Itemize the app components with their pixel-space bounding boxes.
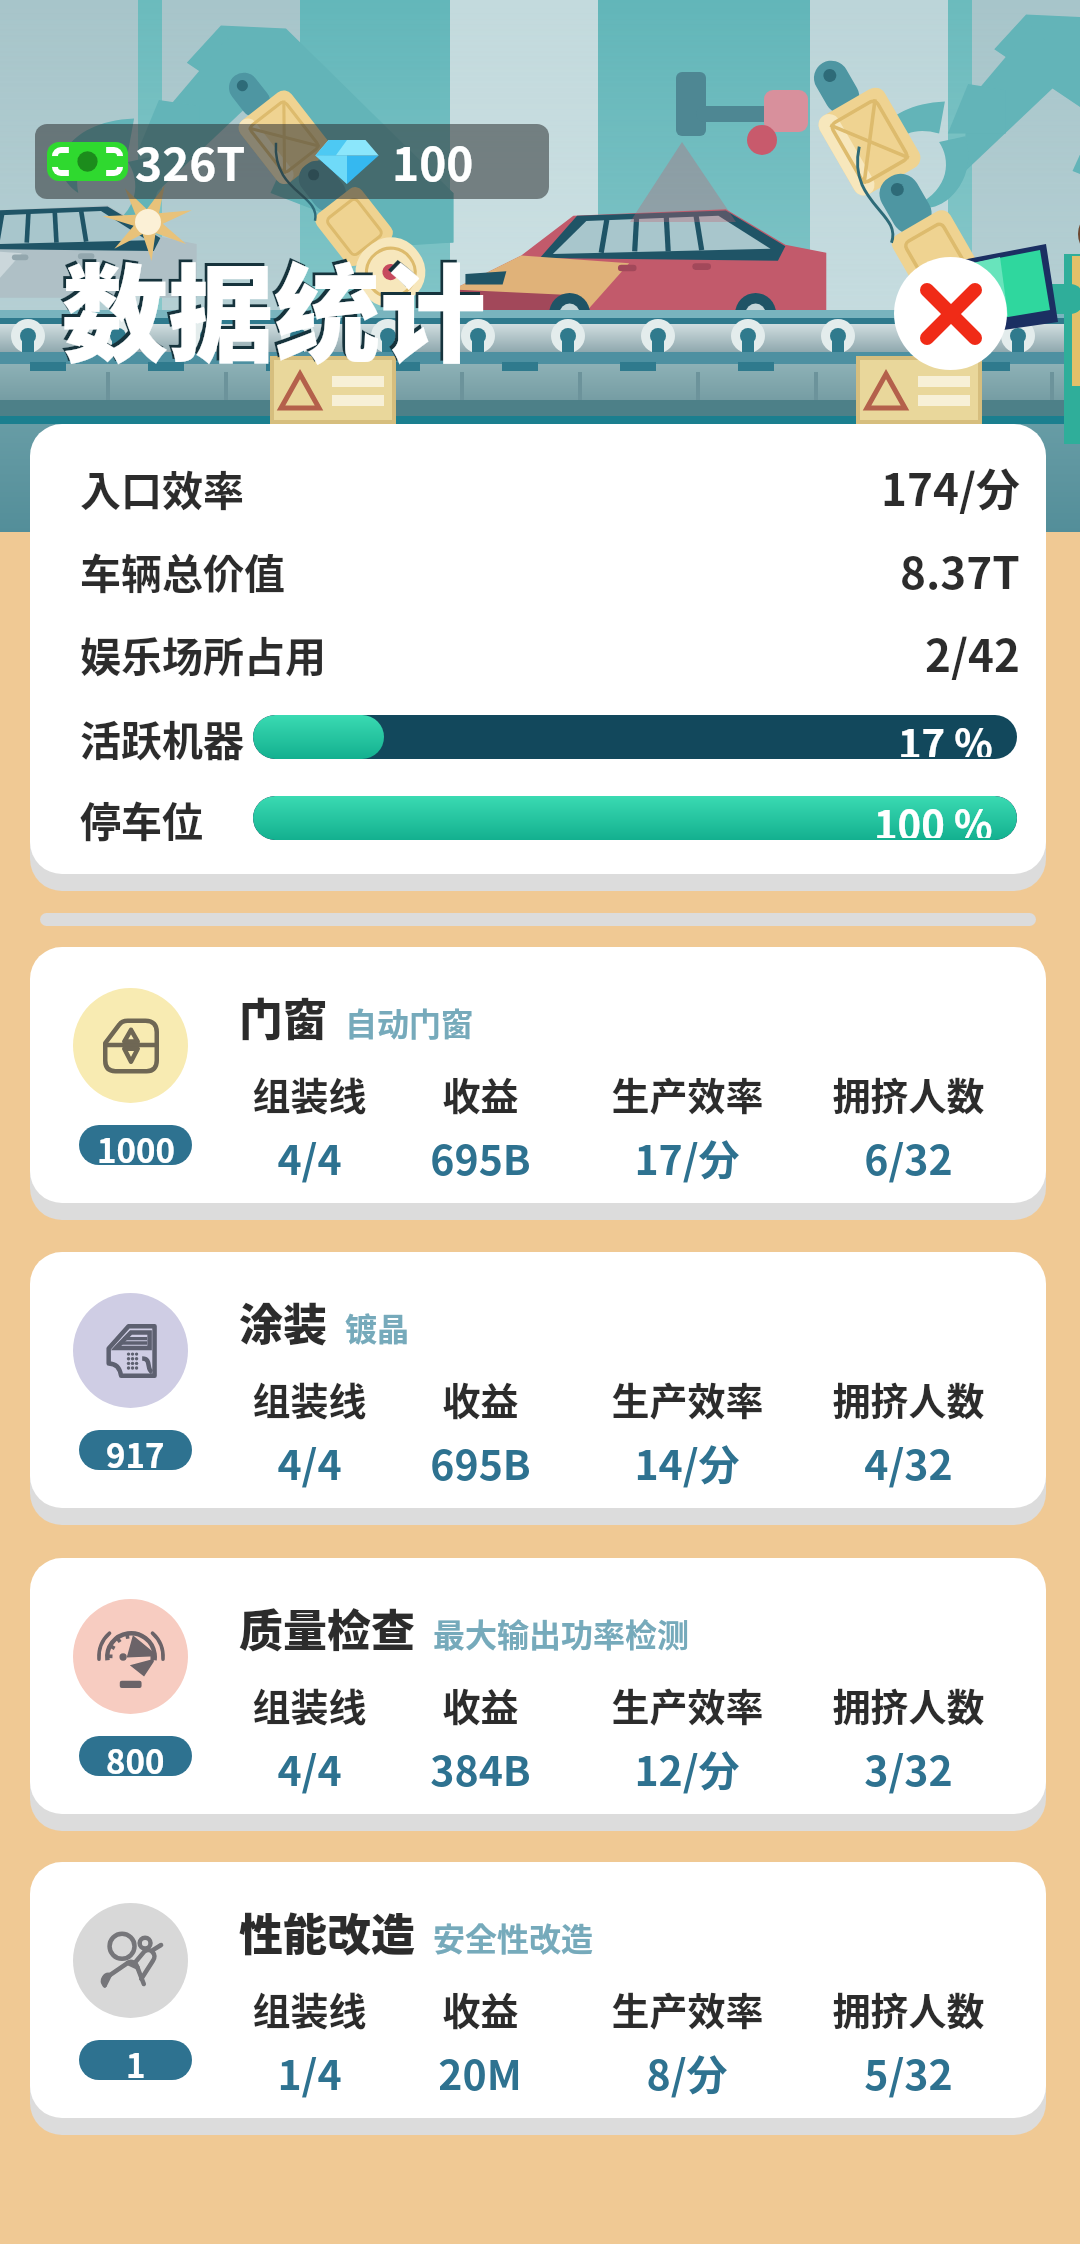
staticText: 生产效率: [611, 1677, 764, 1732]
button[interactable]: 1: [30, 1862, 1046, 2118]
staticText: 20M: [438, 2042, 522, 2101]
staticText: 4/4: [277, 1127, 342, 1186]
staticText: 活跃机器: [80, 708, 244, 767]
staticText: 娱乐场所占用: [80, 624, 326, 683]
staticText: 3/32: [864, 1738, 953, 1797]
staticText: 拥挤人数: [832, 1371, 985, 1426]
staticText: 收益: [442, 1677, 519, 1732]
staticText: 100 %: [874, 796, 993, 838]
staticText: 性能改造: [239, 1900, 415, 1964]
button[interactable]: 800: [30, 1558, 1046, 1814]
staticText: 326T: [135, 128, 246, 195]
staticText: 1: [126, 2040, 146, 2080]
staticText: 组装线: [252, 1677, 367, 1732]
staticText: 涂装: [239, 1290, 327, 1354]
staticText: 800: [106, 1736, 165, 1776]
button[interactable]: 1000: [30, 947, 1046, 1203]
staticText: 6/32: [864, 1127, 953, 1186]
staticText: 收益: [442, 1371, 519, 1426]
staticText: 5/32: [864, 2042, 953, 2101]
staticText: 生产效率: [611, 1981, 764, 2036]
staticText: 质量检查: [239, 1596, 415, 1660]
staticText: 组装线: [252, 1371, 367, 1426]
staticText: 8/分: [646, 2042, 728, 2101]
staticText: 17 %: [898, 715, 993, 757]
staticText: 生产效率: [611, 1066, 764, 1121]
staticText: 917: [106, 1430, 165, 1470]
staticText: 最大输出功率检测: [433, 1610, 690, 1656]
staticText: 生产效率: [611, 1371, 764, 1426]
staticText: 拥挤人数: [832, 1981, 985, 2036]
button[interactable]: 326T: [35, 124, 549, 199]
button[interactable]: Close: [894, 257, 1007, 370]
staticText: 2/42: [925, 621, 1020, 685]
staticText: 停车位: [80, 789, 203, 848]
staticText: 数据统计: [62, 230, 486, 383]
staticText: 17/分: [634, 1127, 740, 1186]
staticText: 自动门窗: [345, 999, 474, 1045]
staticText: 4/32: [864, 1432, 953, 1491]
staticText: 安全性改造: [433, 1914, 594, 1960]
staticText: 拥挤人数: [832, 1677, 985, 1732]
button[interactable]: 917: [30, 1252, 1046, 1508]
staticText: 入口效率: [80, 458, 244, 517]
staticText: 695B: [430, 1432, 531, 1491]
staticText: 组装线: [252, 1066, 367, 1121]
staticText: 门窗: [239, 985, 327, 1049]
staticText: 1000: [97, 1125, 175, 1165]
staticText: 车辆总价值: [80, 541, 285, 600]
staticText: 100: [392, 128, 474, 195]
staticText: 1/4: [277, 2042, 342, 2101]
staticText: 174/分: [881, 455, 1020, 519]
staticText: 8.37T: [900, 538, 1020, 602]
staticText: 收益: [442, 1066, 519, 1121]
staticText: 12/分: [634, 1738, 740, 1797]
staticText: 数据统计: [59, 227, 483, 380]
staticText: 695B: [430, 1127, 531, 1186]
staticText: 拥挤人数: [832, 1066, 985, 1121]
staticText: 4/4: [277, 1738, 342, 1797]
staticText: 4/4: [277, 1432, 342, 1491]
staticText: 384B: [430, 1738, 531, 1797]
staticText: 14/分: [634, 1432, 740, 1491]
staticText: 收益: [442, 1981, 519, 2036]
staticText: 镀晶: [345, 1304, 410, 1350]
staticText: 组装线: [252, 1981, 367, 2036]
